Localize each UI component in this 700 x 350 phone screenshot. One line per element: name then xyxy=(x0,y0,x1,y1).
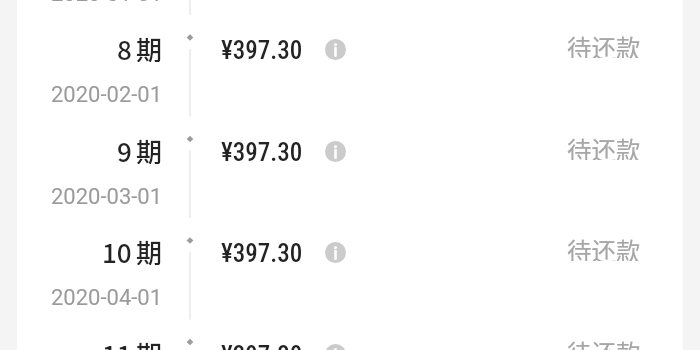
staticText: 8 xyxy=(117,30,132,62)
staticText: 待还款 xyxy=(567,233,641,261)
button[interactable]: 8 xyxy=(17,0,683,102)
button[interactable]: 费用详情 xyxy=(325,39,346,60)
button[interactable]: 10 xyxy=(17,203,683,305)
staticText: 期 xyxy=(136,30,163,62)
staticText: 期 xyxy=(136,233,163,265)
staticText: 待还款 xyxy=(567,335,641,350)
button[interactable]: 费用详情 xyxy=(325,141,346,162)
staticText: 2020-04-01 xyxy=(51,285,163,311)
button[interactable]: 11 xyxy=(17,305,683,350)
button[interactable]: 9 xyxy=(17,102,683,204)
staticText: 期 xyxy=(136,132,163,164)
staticText: 11 xyxy=(102,335,132,350)
staticText: 期 xyxy=(136,335,163,350)
staticText: 待还款 xyxy=(567,132,641,160)
staticText: ¥397.30 xyxy=(221,36,303,64)
button[interactable]: 7 xyxy=(17,0,683,1)
staticText: ¥397.30 xyxy=(221,138,303,166)
staticText: 2020-03-01 xyxy=(51,184,163,210)
button[interactable]: 费用详情 xyxy=(325,344,346,350)
staticText: ¥397.30 xyxy=(221,341,303,350)
staticText: ¥397.30 xyxy=(221,239,303,267)
staticText: 9 xyxy=(117,132,132,164)
staticText: 待还款 xyxy=(567,30,641,58)
staticText: 2020-01-01 xyxy=(51,0,163,7)
button[interactable]: 费用详情 xyxy=(325,242,346,263)
staticText: 10 xyxy=(102,233,132,265)
staticText: 2020-02-01 xyxy=(51,82,163,108)
